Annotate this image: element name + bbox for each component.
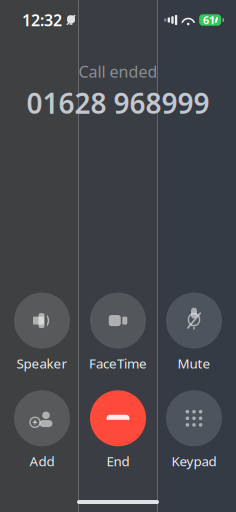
button[interactable]: Speaker [11, 293, 73, 372]
staticText: Mute [177, 355, 210, 372]
button[interactable]: End call [87, 390, 149, 470]
button[interactable]: Add call [11, 390, 73, 470]
staticText: Add [29, 452, 54, 470]
staticText: Call ended [78, 61, 157, 82]
staticText: FaceTime [89, 355, 147, 372]
staticText: Speaker [16, 355, 67, 372]
staticText: 12:32 [22, 9, 62, 31]
button[interactable]: Mute [163, 293, 225, 372]
button[interactable]: Keypad [163, 390, 225, 470]
staticText: Keypad [171, 452, 216, 470]
button[interactable]: FaceTime [87, 293, 149, 372]
staticText: End [106, 452, 129, 470]
staticText: 01628 968999 [26, 84, 209, 121]
staticText: 61 [203, 13, 215, 27]
